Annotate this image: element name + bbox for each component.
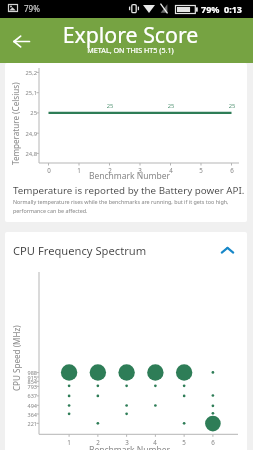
staticText: Temperature (Celsius) xyxy=(10,82,21,165)
staticText: CPU Frequency Spectrum xyxy=(13,243,217,258)
staticText: Explore Score xyxy=(4,20,253,49)
other: Collapse section xyxy=(217,240,237,260)
staticText: 793 xyxy=(13,383,37,390)
button[interactable]: CPU Frequency Spectrum xyxy=(5,234,247,266)
staticText: 25 xyxy=(164,102,178,110)
staticText: 5 xyxy=(178,438,190,446)
staticText: 79% xyxy=(201,3,220,15)
staticText: 25 xyxy=(13,109,37,117)
staticText: Temperature is reported by the Battery p… xyxy=(13,184,245,197)
staticText: 915 xyxy=(13,374,37,381)
staticText: Benchmark Number xyxy=(6,170,253,182)
staticText: 1 xyxy=(73,166,85,174)
staticText: CPU Speed (MHz) xyxy=(11,325,22,391)
staticText: 25,2 xyxy=(13,69,37,77)
staticText: 4 xyxy=(149,438,161,446)
button[interactable]: Back xyxy=(5,25,37,57)
staticText: Normally temperature rises while the ben… xyxy=(13,198,229,205)
staticText: METAL, ON THIS HT5 (5.1) xyxy=(4,45,253,55)
staticText: 2 xyxy=(104,166,116,174)
staticText: 221 xyxy=(13,420,37,427)
staticText: 6 xyxy=(226,166,238,174)
staticText: 0:13 xyxy=(224,3,242,15)
staticText: 988 xyxy=(13,369,37,376)
staticText: 1 xyxy=(63,438,75,446)
staticText: 5 xyxy=(195,166,207,174)
staticText: 6 xyxy=(207,438,219,446)
staticText: 24,9 xyxy=(13,130,37,138)
staticText: 24,8 xyxy=(13,150,37,158)
staticText: 854 xyxy=(13,378,37,385)
staticText: Benchmark Number xyxy=(6,444,253,450)
staticText: 0 xyxy=(43,166,55,174)
staticText: performance can be affected. xyxy=(13,207,88,214)
staticText: 25 xyxy=(225,102,239,110)
staticText: 79% xyxy=(24,3,40,14)
staticText: 364 xyxy=(13,411,37,418)
staticText: 637 xyxy=(13,392,37,399)
staticText: 25,1 xyxy=(13,89,37,97)
staticText: 494 xyxy=(13,402,37,409)
staticText: 2 xyxy=(92,438,104,446)
staticText: 4 xyxy=(165,166,177,174)
staticText: 25 xyxy=(103,102,117,110)
staticText: 3 xyxy=(134,166,146,174)
staticText: 3 xyxy=(121,438,133,446)
